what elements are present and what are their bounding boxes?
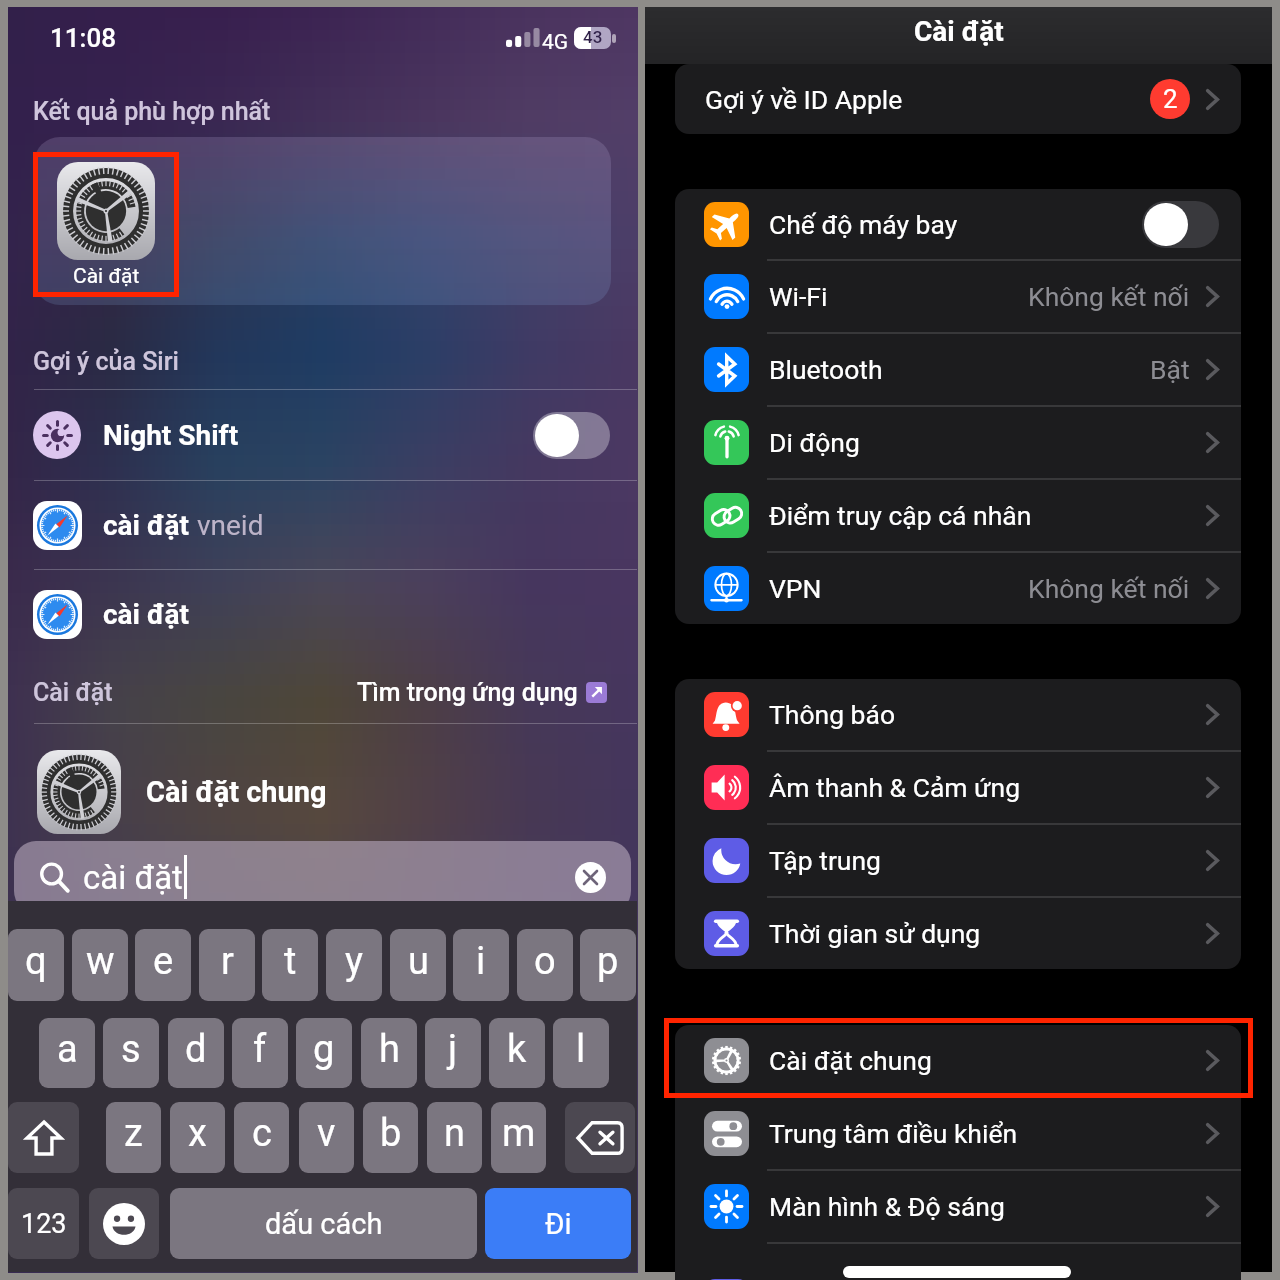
button[interactable]: Gợi ý về ID Apple <box>675 64 1241 134</box>
staticText: vneid <box>190 509 264 542</box>
staticText: Cài đặt chung <box>769 1045 932 1076</box>
staticText: Gợi ý của Siri <box>33 347 179 376</box>
button[interactable]: j <box>425 1018 481 1088</box>
staticText: Màn hình & Độ sáng <box>769 1191 1005 1222</box>
staticText: cài đặt <box>103 509 190 542</box>
staticText: Cài đặt <box>73 264 140 289</box>
staticText: cài đặt <box>103 598 190 631</box>
staticText: d <box>185 1027 207 1072</box>
button[interactable]: w <box>72 929 128 1001</box>
staticText: c <box>252 1111 272 1156</box>
staticText: o <box>534 939 556 984</box>
staticText: u <box>408 939 429 984</box>
button[interactable]: Cài đặt <box>33 152 179 297</box>
button[interactable]: Shift <box>8 1102 79 1173</box>
button[interactable]: o <box>517 929 573 1001</box>
button[interactable]: dấu cách <box>170 1188 477 1259</box>
staticText: Không kết nối <box>1028 573 1190 604</box>
button[interactable]: t <box>262 929 318 1001</box>
button[interactable]: Đi <box>485 1188 631 1259</box>
staticText: a <box>57 1027 78 1072</box>
button[interactable]: s <box>103 1018 159 1088</box>
button[interactable]: Tìm trong ứng dụng <box>357 678 607 707</box>
button[interactable]: v <box>299 1102 354 1173</box>
button[interactable]: cài đặt <box>8 570 637 659</box>
button[interactable]: k <box>489 1018 545 1088</box>
staticText: 11:08 <box>50 23 116 53</box>
button[interactable]: c <box>234 1102 289 1173</box>
button[interactable]: b <box>363 1102 418 1173</box>
staticText: n <box>444 1111 465 1156</box>
button[interactable]: Xóa <box>575 862 606 893</box>
staticText: m <box>502 1111 536 1156</box>
button[interactable]: n <box>427 1102 482 1173</box>
button[interactable]: q <box>8 929 64 1001</box>
staticText: j <box>448 1027 458 1072</box>
button[interactable]: cài đặt <box>8 481 637 570</box>
staticText: g <box>313 1027 335 1072</box>
staticText: Wi-Fi <box>769 281 828 312</box>
staticText: Cài đặt <box>33 678 113 707</box>
button[interactable]: cài đặt <box>14 841 631 913</box>
staticText: v <box>317 1111 336 1156</box>
button[interactable]: d <box>168 1018 224 1088</box>
button[interactable]: h <box>361 1018 417 1088</box>
staticText: Bluetooth <box>769 354 883 385</box>
staticText: q <box>25 939 47 984</box>
button[interactable]: Trung tâm điều khiển <box>675 1098 1241 1169</box>
staticText: x <box>188 1111 207 1156</box>
staticText: Gợi ý về ID Apple <box>705 84 903 115</box>
button[interactable]: VPN <box>675 553 1241 624</box>
button[interactable]: x <box>170 1102 225 1173</box>
button[interactable]: Chế độ máy bay <box>675 189 1241 259</box>
button[interactable]: Cài đặt chung <box>8 737 637 847</box>
button[interactable]: Thông báo <box>675 679 1241 750</box>
button[interactable]: y <box>326 929 382 1001</box>
staticText: Cài đặt <box>914 15 1004 48</box>
button[interactable]: e <box>135 929 191 1001</box>
staticText: Trung tâm điều khiển <box>769 1118 1018 1149</box>
staticText: Đi <box>545 1207 572 1241</box>
button[interactable]: g <box>296 1018 352 1088</box>
button[interactable]: l <box>553 1018 609 1088</box>
staticText: r <box>221 939 234 984</box>
button[interactable]: f <box>232 1018 288 1088</box>
button[interactable]: m <box>491 1102 546 1173</box>
staticText: Chế độ máy bay <box>769 209 958 240</box>
button[interactable]: Màn hình chính <box>675 1244 1241 1280</box>
button[interactable]: z <box>106 1102 161 1173</box>
staticText: cài đặt <box>83 858 183 897</box>
staticText: w <box>86 939 115 984</box>
staticText: Night Shift <box>103 419 239 452</box>
staticText: Tập trung <box>769 845 881 876</box>
staticText: Kết quả phù hợp nhất <box>33 97 271 126</box>
staticText: 43 <box>583 27 603 47</box>
button[interactable]: Điểm truy cập cá nhân <box>675 480 1241 551</box>
button[interactable]: Di động <box>675 407 1241 478</box>
staticText: VPN <box>769 573 822 604</box>
button[interactable]: u <box>390 929 446 1001</box>
staticText: p <box>597 939 619 984</box>
button[interactable]: Màn hình & Độ sáng <box>675 1171 1241 1242</box>
button[interactable]: Wi-Fi <box>675 261 1241 332</box>
button[interactable]: p <box>580 929 636 1001</box>
button[interactable]: Night Shift <box>8 390 637 480</box>
button[interactable]: Âm thanh & Cảm ứng <box>675 752 1241 823</box>
staticText: 4G <box>542 30 569 55</box>
button[interactable]: Bluetooth <box>675 334 1241 405</box>
staticText: l <box>576 1027 586 1072</box>
button[interactable]: 123 <box>8 1188 79 1259</box>
button[interactable]: a <box>39 1018 95 1088</box>
staticText: i <box>476 939 486 984</box>
button[interactable]: Cài đặt chung <box>675 1025 1241 1096</box>
staticText: Di động <box>769 427 860 458</box>
staticText: Bật <box>1150 354 1190 385</box>
staticText: Không kết nối <box>1028 281 1190 312</box>
button[interactable]: Thời gian sử dụng <box>675 898 1241 969</box>
button[interactable]: Tập trung <box>675 825 1241 896</box>
button[interactable]: Xóa lùi <box>565 1102 635 1173</box>
staticText: z <box>124 1111 143 1156</box>
button[interactable]: r <box>199 929 255 1001</box>
button[interactable]: i <box>453 929 509 1001</box>
button[interactable]: Biểu tượng cảm xúc <box>89 1188 159 1259</box>
